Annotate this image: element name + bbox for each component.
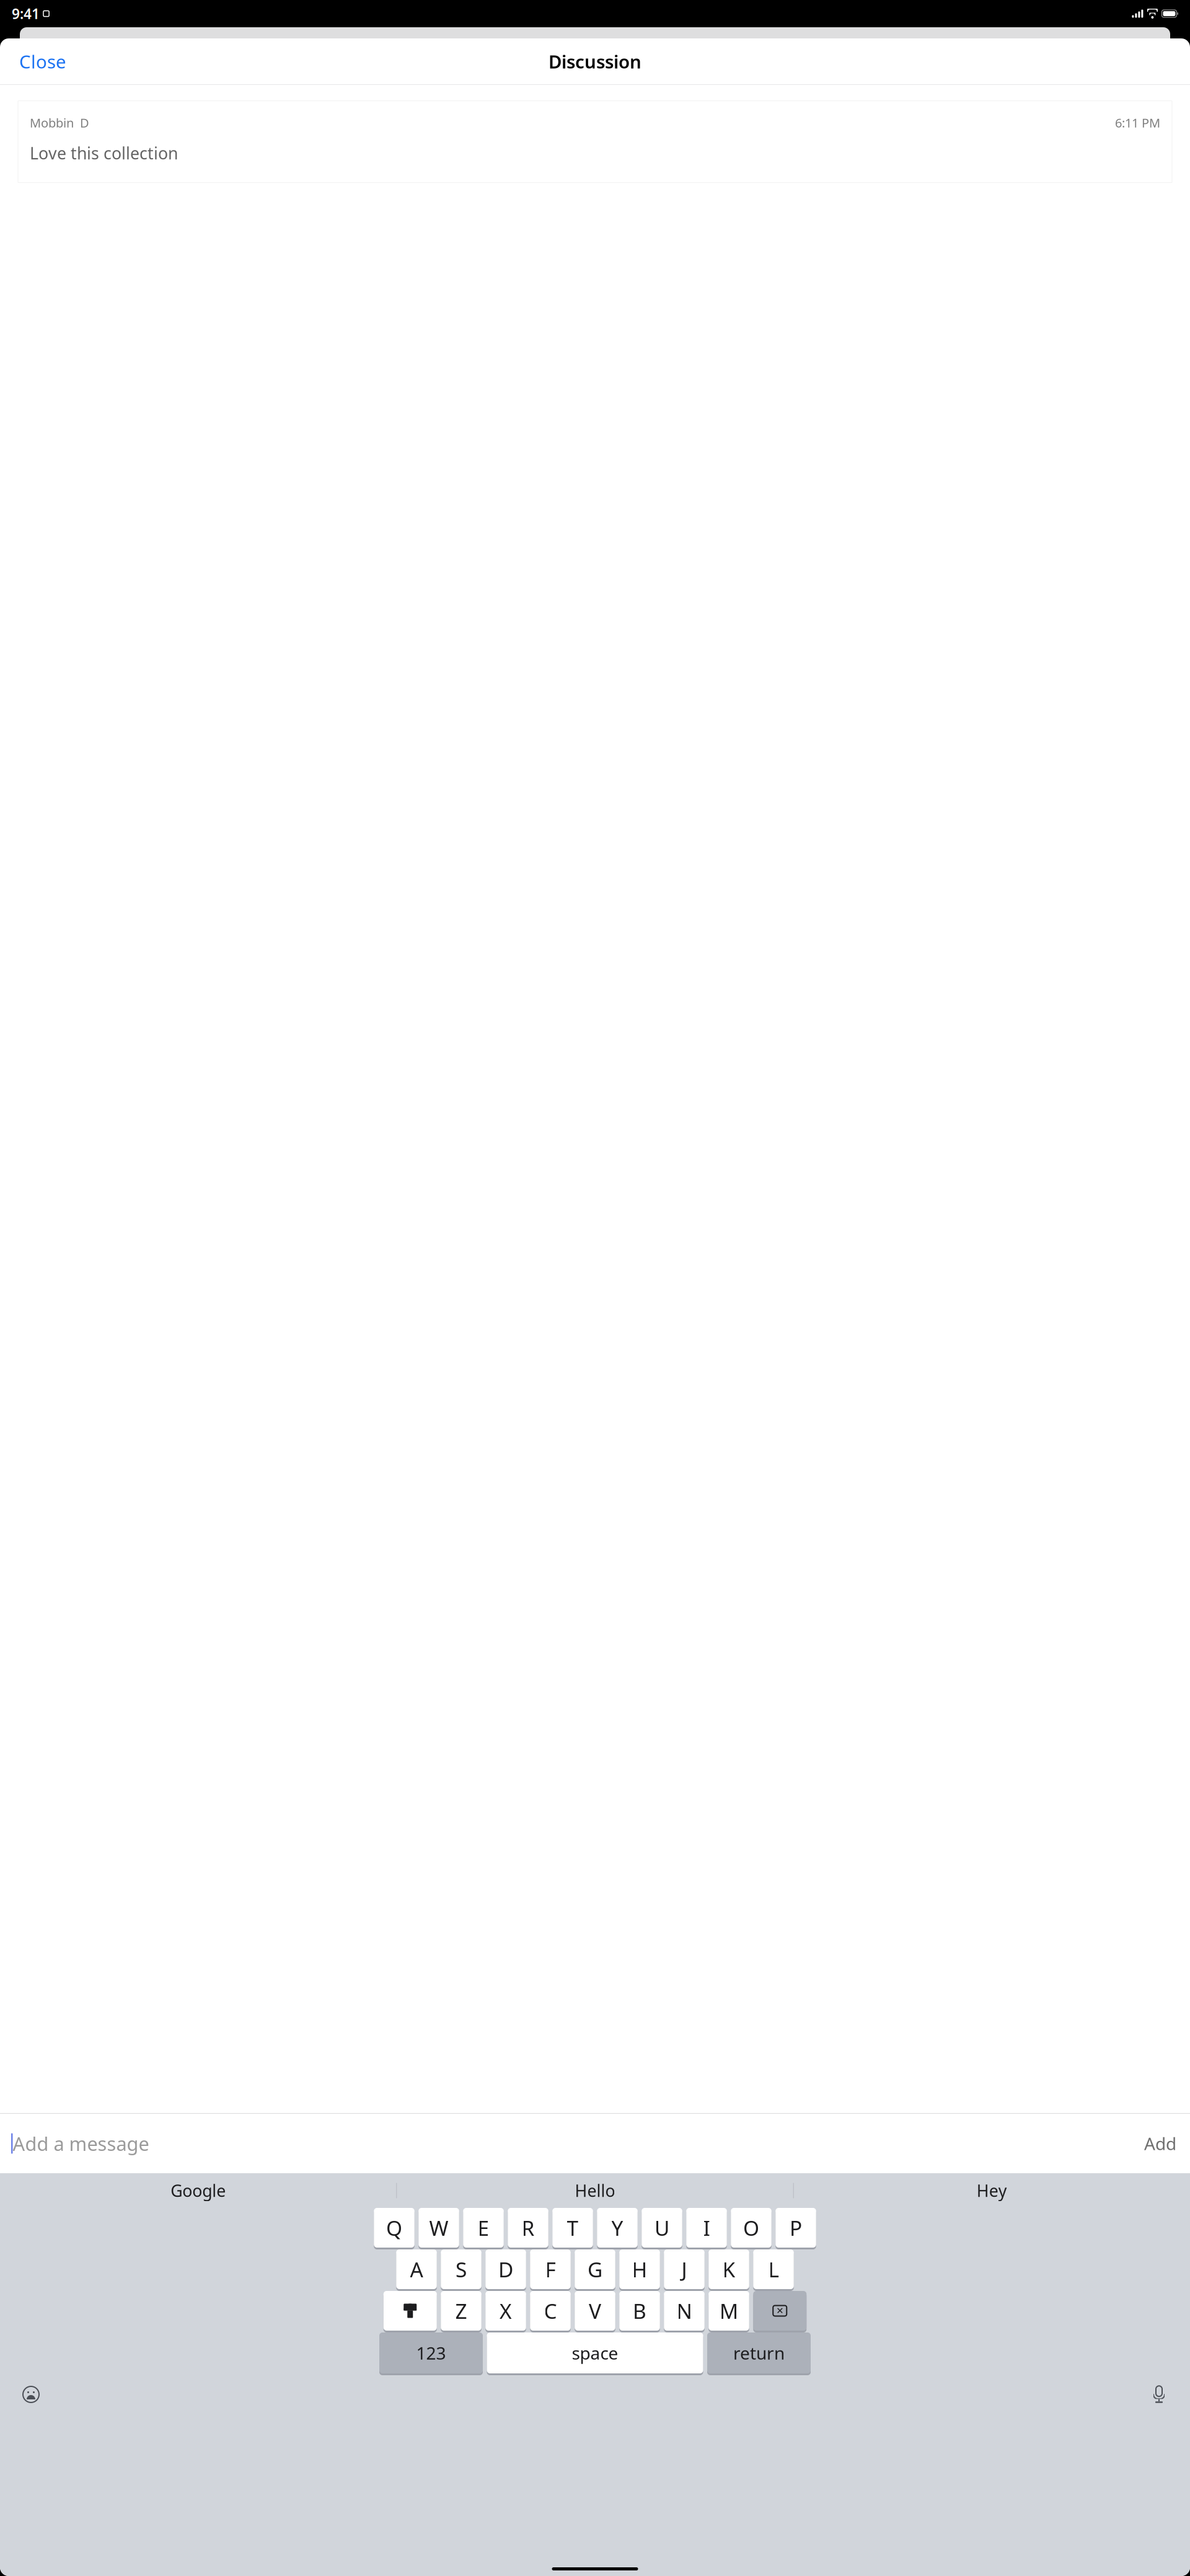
staticText: S [456,2256,467,2283]
button[interactable]: X [485,2291,526,2332]
staticText: space [572,2341,618,2364]
button[interactable]: E [463,2208,504,2249]
staticText: F [545,2256,556,2283]
button[interactable]: N [664,2291,705,2332]
staticText: 6:11 PM [1115,114,1160,131]
button[interactable]: U [642,2208,682,2249]
button[interactable]: C [530,2291,571,2332]
staticText: Mobbin D [30,114,89,131]
button[interactable]: B [619,2291,660,2332]
staticText: Add [1144,2132,1176,2155]
staticText: return [733,2341,785,2364]
staticText: Add a message [13,2131,149,2156]
staticText: I [703,2214,710,2241]
button[interactable]: Hey [794,2176,1190,2205]
staticText: X [500,2297,512,2325]
button[interactable]: H [619,2249,660,2291]
staticText: Discussion [549,49,641,73]
staticText: J [681,2256,687,2283]
staticText: E [478,2214,489,2241]
button[interactable]: space [487,2332,703,2375]
button[interactable]: K [709,2249,749,2291]
button[interactable]: A [396,2249,437,2291]
staticText: G [588,2256,602,2283]
button[interactable]: L [753,2249,794,2291]
button[interactable]: F [530,2249,571,2291]
button[interactable]: P [775,2208,816,2249]
button[interactable]: Delete [753,2291,806,2332]
staticText: N [677,2297,692,2325]
staticText: Love this collection [30,142,178,164]
staticText: W [429,2214,448,2241]
button[interactable]: M [709,2291,749,2332]
button[interactable]: Q [374,2208,414,2249]
button[interactable]: Z [441,2291,481,2332]
staticText: A [410,2256,423,2283]
staticText: L [768,2256,779,2283]
staticText: ✕ [776,2306,784,2316]
staticText: T [567,2214,579,2241]
button[interactable]: R [508,2208,548,2249]
button[interactable]: return [707,2332,811,2375]
staticText: V [589,2297,601,2325]
button[interactable]: Google [0,2176,396,2205]
button[interactable]: S [441,2249,481,2291]
staticText: 123 [416,2341,446,2364]
staticText: O [743,2214,759,2241]
button[interactable]: O [731,2208,771,2249]
staticText: U [654,2214,669,2241]
button[interactable]: Close [12,44,74,78]
button[interactable]: V [575,2291,615,2332]
button[interactable]: T [552,2208,593,2249]
staticText: Q [386,2214,402,2241]
button[interactable]: G [575,2249,615,2291]
staticText: H [632,2256,647,2283]
button[interactable]: Y [597,2208,638,2249]
button[interactable]: W [418,2208,459,2249]
staticText: K [722,2256,735,2283]
staticText: Close [19,49,66,73]
button[interactable]: Add a message [0,2114,1190,2173]
button[interactable]: Hello [397,2176,793,2205]
button[interactable]: 123 [379,2332,483,2375]
staticText: 9:41 [12,4,40,23]
button[interactable]: J [664,2249,705,2291]
staticText: Y [611,2214,623,2241]
staticText: R [522,2214,535,2241]
staticText: M [720,2297,738,2325]
button[interactable]: Shift [384,2291,437,2332]
button[interactable]: I [686,2208,727,2249]
button[interactable]: Dictation [1139,2378,1179,2411]
staticText: B [633,2297,646,2325]
staticText: Hello [575,2180,615,2202]
staticText: Hey [977,2180,1007,2202]
button[interactable]: D [485,2249,526,2291]
staticText: D [498,2256,513,2283]
staticText: P [790,2214,802,2241]
button[interactable]: Emoji [11,2378,51,2411]
staticText: Z [455,2297,467,2325]
staticText: Google [171,2180,226,2202]
staticText: C [544,2297,557,2325]
